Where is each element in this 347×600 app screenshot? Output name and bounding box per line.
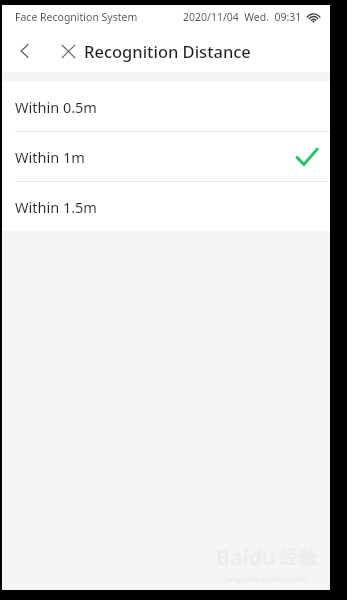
staticText: 经验: [279, 546, 317, 570]
staticText: Within 0.5m: [15, 97, 97, 117]
button[interactable]: Within 1.5m: [2, 182, 330, 231]
staticText: Within 1.5m: [15, 197, 97, 217]
staticText: Within 1m: [15, 147, 85, 167]
button[interactable]: Within 1m: [2, 132, 330, 181]
button[interactable]: Back: [10, 36, 40, 66]
staticText: Face Recognition System: [15, 10, 138, 24]
staticText: Recognition Distance: [84, 40, 251, 62]
staticText: Baidu: [216, 543, 276, 572]
button[interactable]: Within 0.5m: [2, 82, 330, 131]
button[interactable]: Close: [54, 37, 82, 65]
staticText: 2020/11/04 Wed. 09:31: [183, 10, 302, 24]
